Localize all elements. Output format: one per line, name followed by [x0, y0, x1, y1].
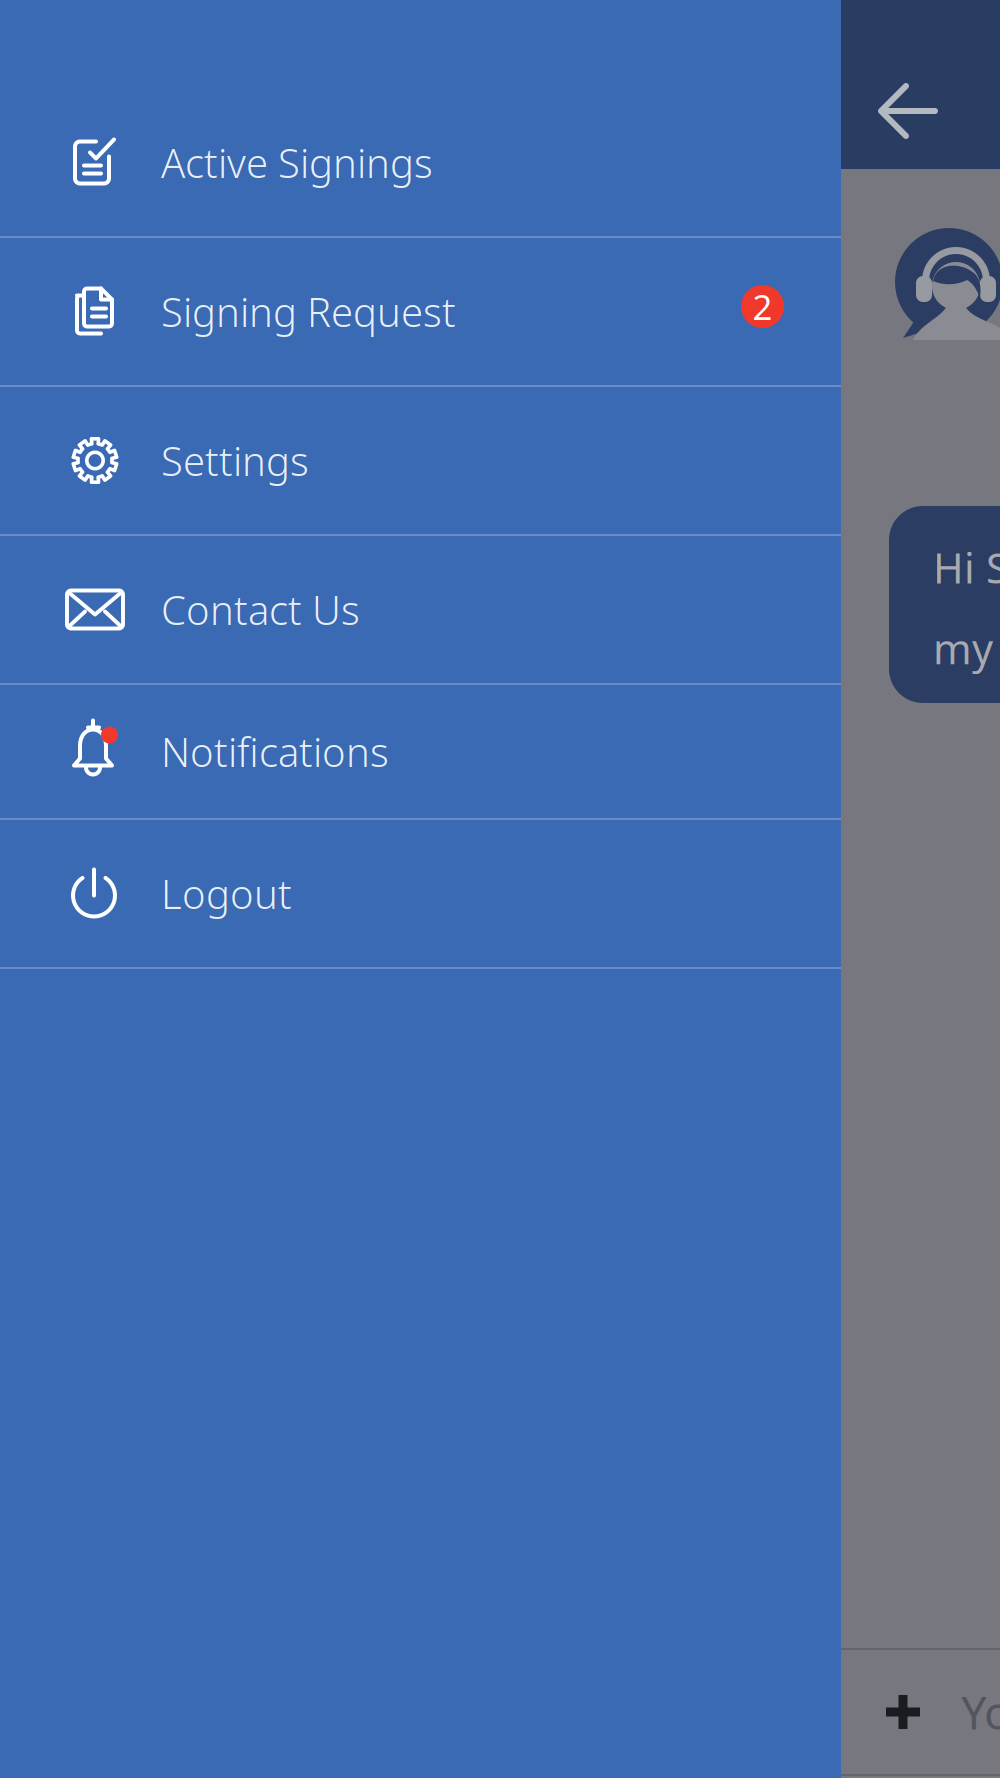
button[interactable]: Add attachment [841, 1665, 961, 1759]
button[interactable]: Signing Request [0, 238, 841, 385]
staticText: Contact Us [161, 583, 360, 636]
staticText: my s [933, 621, 1000, 676]
staticText: Yo [961, 1682, 1000, 1742]
staticText: Hi S [933, 540, 1000, 595]
button[interactable]: Settings [0, 387, 841, 534]
staticText: Settings [161, 434, 309, 487]
staticText: 2 [752, 283, 772, 329]
staticText: Active Signings [161, 136, 433, 189]
staticText: Logout [161, 867, 292, 920]
staticText: Notifications [161, 725, 389, 778]
button[interactable]: Contact Us [0, 536, 841, 683]
button[interactable]: Active Signings [0, 89, 841, 236]
button[interactable]: Notifications [0, 685, 841, 818]
button[interactable]: Back [841, 0, 1000, 169]
staticText: Signing Request [161, 285, 456, 338]
button[interactable]: Logout [0, 820, 841, 967]
